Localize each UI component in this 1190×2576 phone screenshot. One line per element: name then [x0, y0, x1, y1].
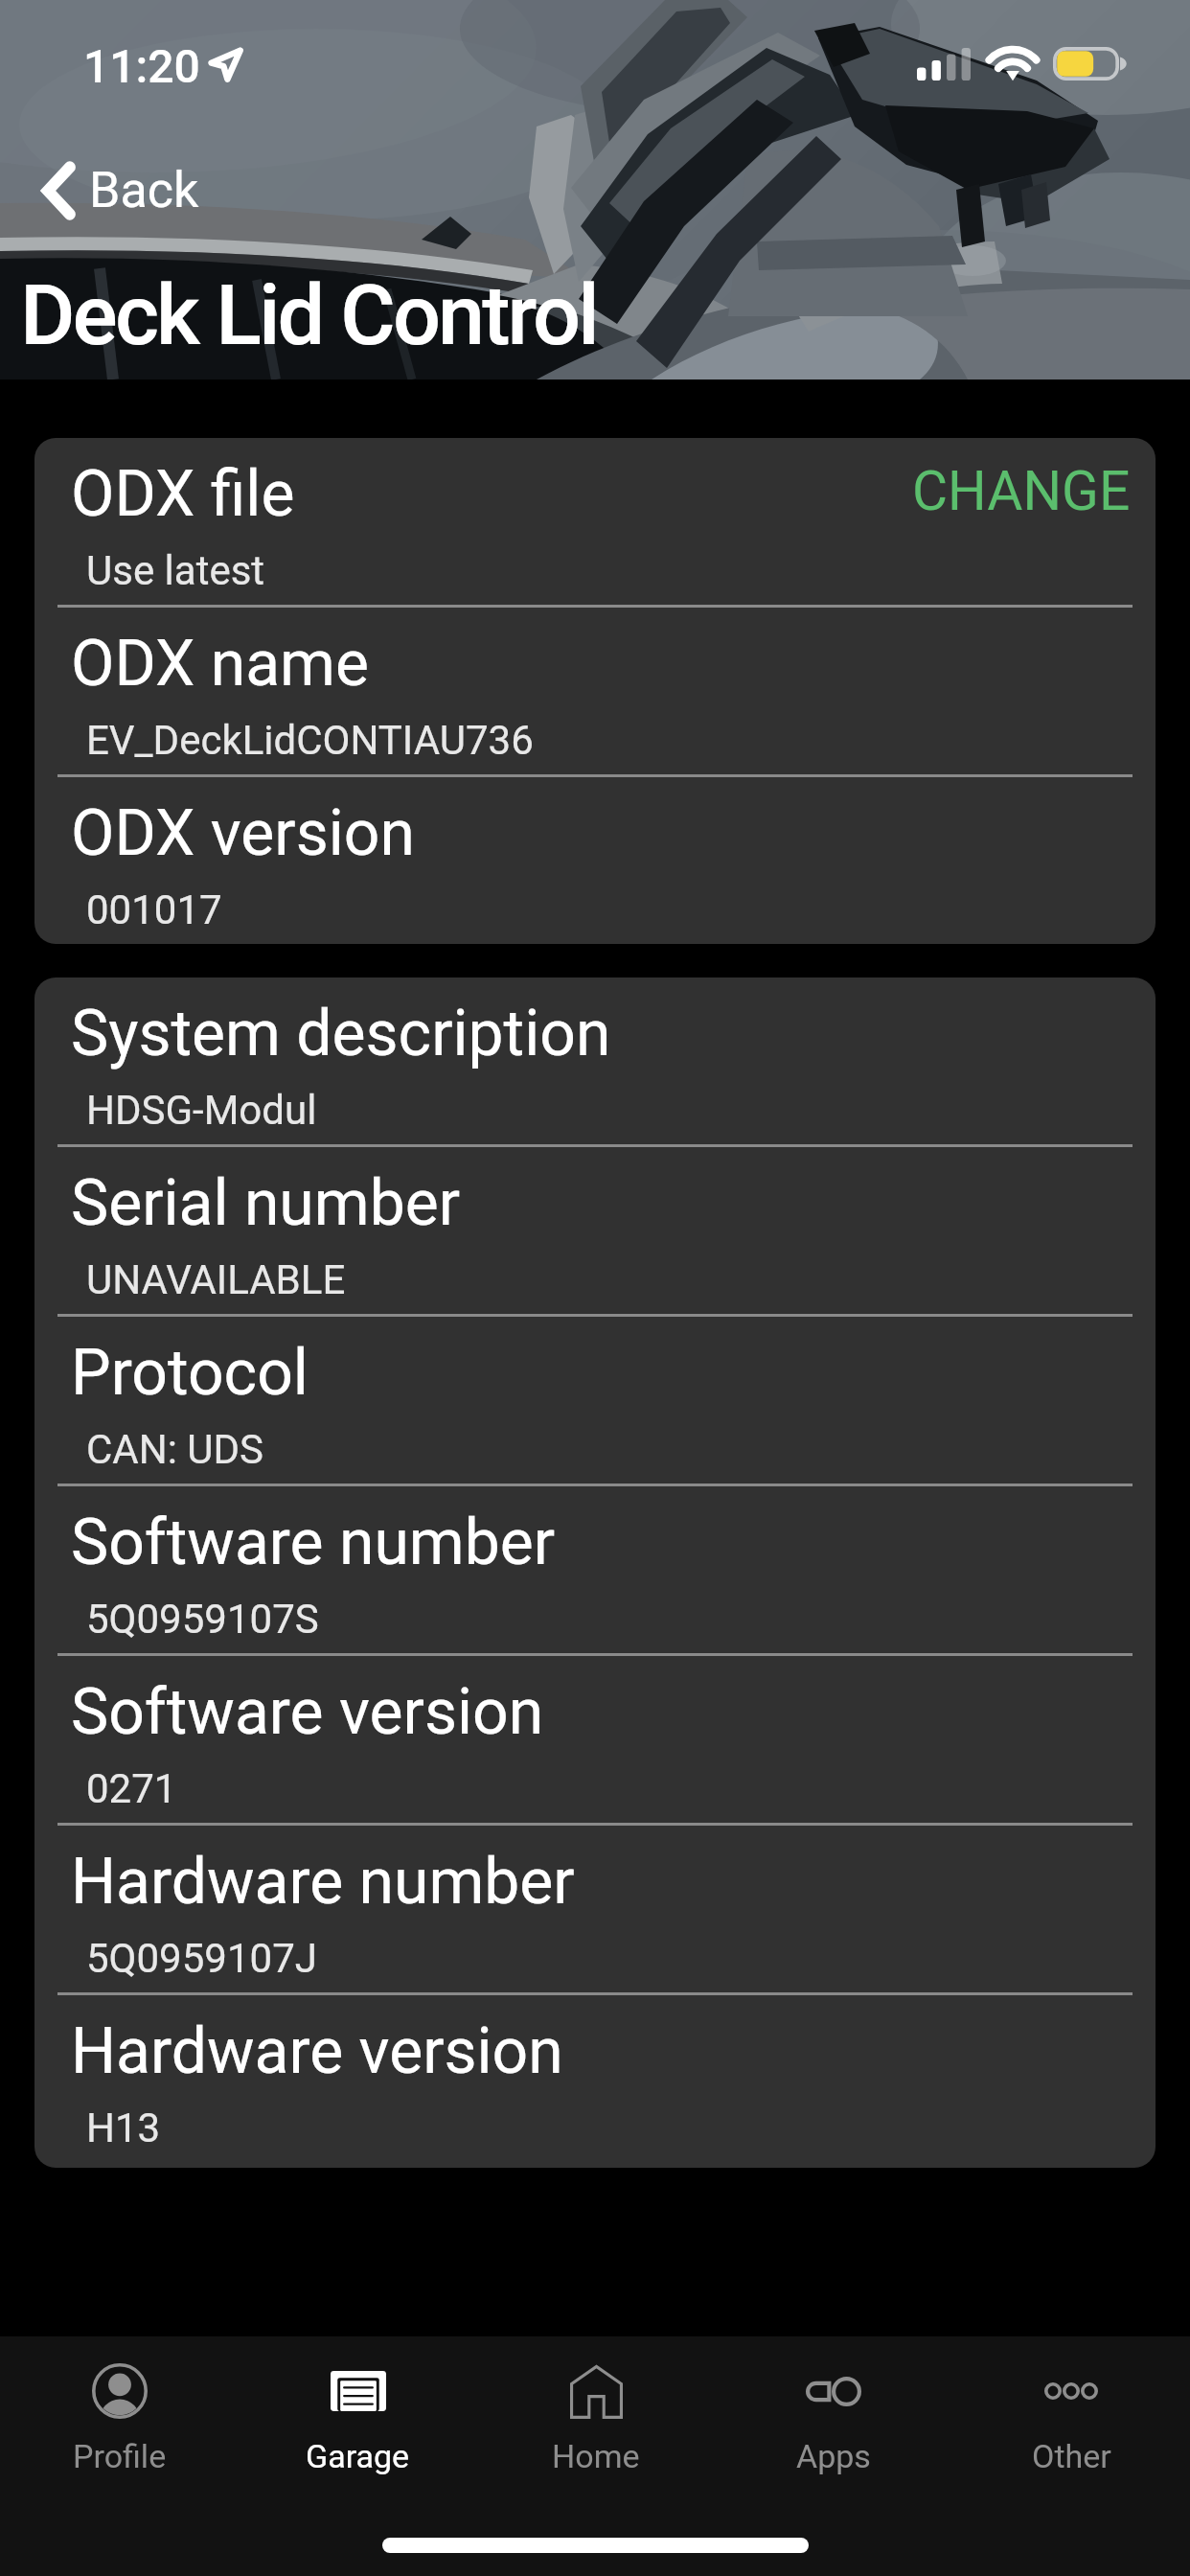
staticText: CAN: UDS	[86, 1426, 264, 1473]
other: Other	[1044, 2382, 1098, 2400]
staticText: CHANGE	[912, 459, 1131, 523]
other: Home	[570, 2364, 623, 2419]
button[interactable]: Hardware number	[34, 1826, 1156, 1992]
staticText: Protocol	[71, 1336, 309, 1410]
button[interactable]: Garage	[239, 2336, 477, 2490]
staticText: Garage	[306, 2437, 410, 2475]
staticText: Software number	[71, 1506, 556, 1579]
button[interactable]: Software version	[34, 1656, 1156, 1823]
button[interactable]: System description	[34, 977, 1156, 1144]
button[interactable]: Profile	[0, 2336, 239, 2490]
button[interactable]: Serial number	[34, 1147, 1156, 1314]
staticText: Other	[1032, 2437, 1111, 2475]
button[interactable]: Software number	[34, 1486, 1156, 1653]
button[interactable]: ODX name	[34, 608, 1156, 774]
button[interactable]: Protocol	[34, 1317, 1156, 1483]
button[interactable]: Home	[477, 2336, 715, 2490]
staticText: Apps	[796, 2437, 871, 2475]
staticText: ODX file	[71, 457, 295, 531]
staticText: ODX name	[71, 627, 369, 701]
staticText: 5Q0959107S	[86, 1596, 319, 1643]
staticText: Hardware version	[71, 2014, 563, 2088]
staticText: Profile	[73, 2437, 167, 2475]
button[interactable]: Hardware version	[34, 1995, 1156, 2168]
staticText: Use latest	[86, 547, 265, 594]
staticText: ODX version	[71, 796, 415, 870]
staticText: 5Q0959107J	[86, 1935, 317, 1982]
other: Apps	[806, 2377, 861, 2406]
staticText: HDSG-Modul	[86, 1087, 317, 1134]
staticText: Serial number	[71, 1166, 461, 1240]
staticText: 001017	[86, 886, 222, 933]
staticText: 11:20	[83, 39, 200, 93]
staticText: UNAVAILABLE	[86, 1256, 346, 1303]
staticText: Home	[552, 2437, 640, 2475]
button[interactable]: CHANGE	[893, 440, 1150, 542]
other: Profile	[92, 2363, 148, 2419]
staticText: System description	[71, 997, 611, 1070]
staticText: Back	[89, 161, 199, 219]
staticText: Software version	[71, 1675, 544, 1749]
staticText: Hardware number	[71, 1845, 575, 1919]
button[interactable]: ODX version	[34, 777, 1156, 944]
button[interactable]: Back	[32, 153, 211, 227]
button[interactable]: ODX file	[34, 438, 1156, 605]
staticText: EV_DeckLidCONTIAU736	[86, 717, 534, 764]
button[interactable]: Apps	[715, 2336, 952, 2490]
staticText: Deck Lid Control	[20, 265, 597, 364]
staticText: H13	[86, 2104, 161, 2151]
other: Garage	[331, 2371, 386, 2411]
button[interactable]: Other	[952, 2336, 1190, 2490]
staticText: 0271	[86, 1765, 177, 1812]
